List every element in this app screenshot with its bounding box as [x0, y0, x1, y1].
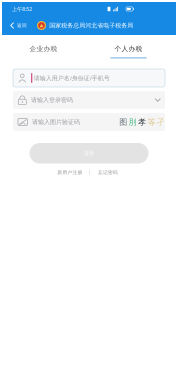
button[interactable]: 忘记密码: [98, 168, 119, 176]
staticText: 个人办税: [114, 44, 142, 53]
staticText: 企业办税: [29, 44, 57, 53]
button[interactable]: 企业办税: [2, 35, 85, 68]
staticText: 上午8:52: [12, 5, 32, 13]
staticText: 请输入用户名/身份证/手机号: [34, 74, 110, 82]
staticText: 请输入图片验证码: [32, 118, 80, 126]
staticText: 请输入登录密码: [31, 96, 73, 104]
staticText: 孑: [157, 117, 165, 127]
staticText: 等: [147, 117, 155, 127]
staticText: 忘记密码: [98, 170, 118, 175]
staticText: 登录: [84, 150, 94, 157]
button[interactable]: 登录: [29, 143, 148, 163]
button[interactable]: 新用户注册: [57, 168, 83, 176]
staticText: 返回: [17, 23, 27, 28]
staticText: 刖: [129, 117, 137, 127]
staticText: 图: [119, 117, 127, 127]
staticText: 新用户注册: [57, 170, 82, 175]
button[interactable]: 个人办税: [85, 35, 172, 68]
staticText: 国家税务总局河北省电子税务局: [49, 22, 133, 29]
button[interactable]: 返回: [2, 16, 32, 35]
staticText: 孝: [138, 117, 146, 127]
